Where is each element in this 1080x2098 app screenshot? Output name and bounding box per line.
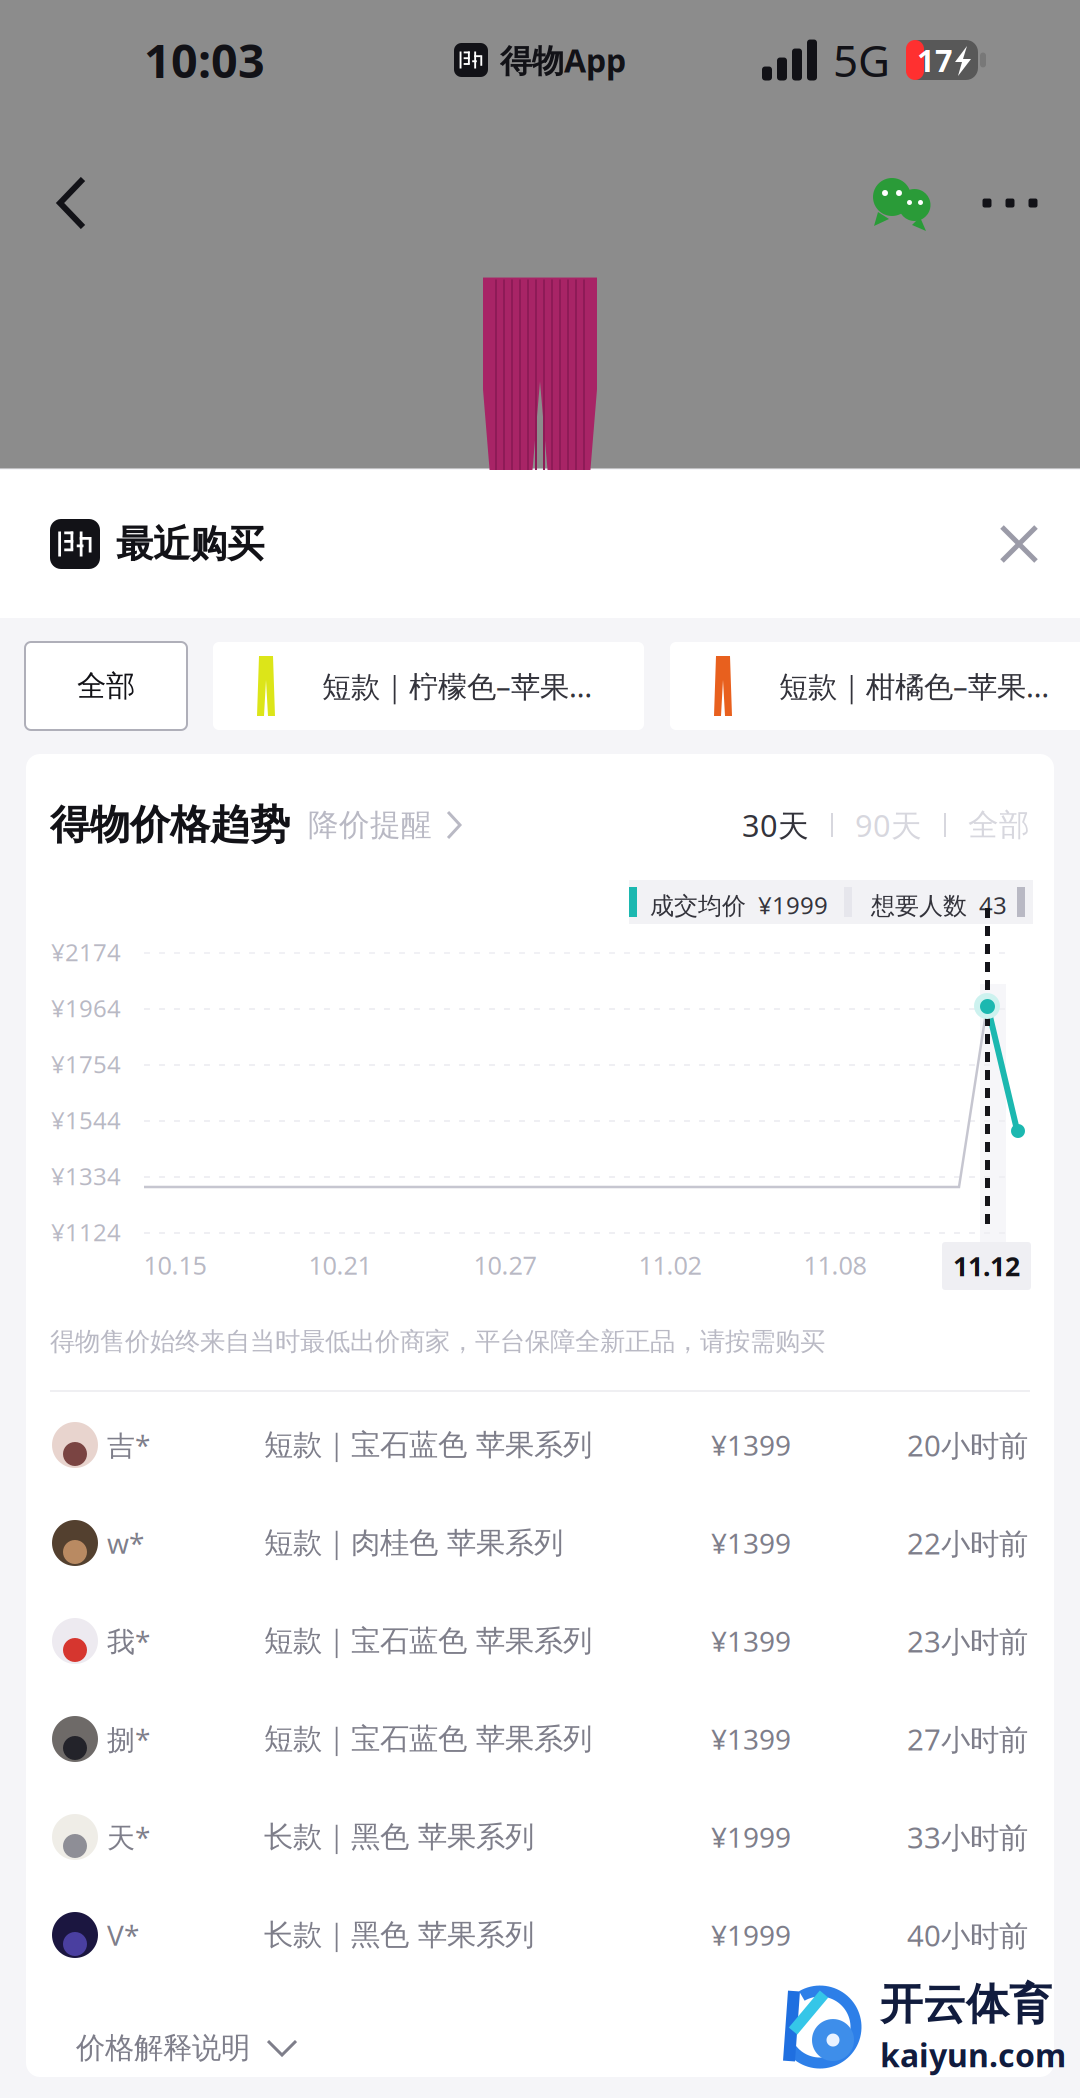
staticText: 降价提醒: [308, 806, 432, 844]
staticText: 11.08: [803, 1248, 866, 1282]
button[interactable]: 天*: [26, 1788, 1054, 1886]
staticText: ¥1399: [711, 1720, 791, 1758]
button[interactable]: 短款｜柑橘色–苹果…: [670, 642, 1080, 730]
staticText: 得物App: [500, 39, 626, 81]
button[interactable]: 关闭: [976, 501, 1062, 587]
staticText: 全部: [968, 806, 1030, 844]
staticText: 33小时前: [907, 1817, 1028, 1856]
staticText: 吉*: [107, 1426, 150, 1464]
staticText: 10:03: [144, 29, 265, 91]
staticText: 17: [917, 40, 953, 80]
staticText: 成交均价 ¥1999: [650, 889, 828, 921]
staticText: 10.27: [473, 1248, 536, 1282]
staticText: 22小时前: [907, 1523, 1028, 1562]
staticText: ¥1399: [711, 1524, 791, 1562]
staticText: V*: [107, 1916, 139, 1954]
staticText: kaiyun.com: [880, 2033, 1066, 2076]
staticText: 30天: [742, 805, 809, 845]
staticText: 11.02: [638, 1248, 701, 1282]
button[interactable]: w*: [26, 1494, 1054, 1592]
staticText: ¥2174: [51, 936, 121, 968]
staticText: ¥1544: [51, 1104, 121, 1136]
staticText: 5G: [833, 31, 890, 89]
button[interactable]: 捌*: [26, 1690, 1054, 1788]
button[interactable]: 返回: [0, 151, 118, 255]
staticText: 短款｜宝石蓝色 苹果系列: [264, 1427, 592, 1463]
staticText: ¥1754: [51, 1048, 121, 1080]
staticText: 20小时前: [907, 1425, 1028, 1464]
button[interactable]: 全部: [968, 806, 1030, 844]
staticText: ¥1964: [51, 992, 121, 1024]
staticText: 11.12: [953, 1248, 1020, 1284]
staticText: 长款｜黑色 苹果系列: [264, 1819, 534, 1855]
staticText: 短款｜肉桂色 苹果系列: [264, 1525, 563, 1561]
staticText: 90天: [855, 805, 922, 845]
staticText: ¥1399: [711, 1622, 791, 1660]
staticText: 想要人数 43: [871, 889, 1007, 921]
staticText: 开云体育: [880, 1978, 1052, 2030]
staticText: ¥1999: [711, 1818, 791, 1856]
staticText: 天*: [107, 1818, 150, 1856]
button[interactable]: 价格解释说明: [50, 2012, 324, 2084]
staticText: 我*: [107, 1622, 150, 1660]
staticText: 23小时前: [907, 1621, 1028, 1660]
staticText: 价格解释说明: [76, 2030, 250, 2066]
staticText: 27小时前: [907, 1719, 1028, 1758]
staticText: 得物售价始终来自当时最低出价商家，平台保障全新正品，请按需购买: [50, 1326, 825, 1357]
staticText: ¥1999: [711, 1916, 791, 1954]
staticText: 得物价格趋势: [50, 800, 290, 849]
staticText: 短款｜柠檬色–苹果…: [322, 666, 592, 705]
staticText: 长款｜黑色 苹果系列: [264, 1917, 534, 1953]
staticText: 40小时前: [907, 1915, 1028, 1954]
staticText: 10.21: [308, 1248, 371, 1282]
staticText: ¥1399: [711, 1426, 791, 1464]
button[interactable]: 短款｜柠檬色–苹果…: [213, 642, 644, 730]
staticText: ¥1334: [51, 1160, 121, 1192]
staticText: 短款｜柑橘色–苹果…: [779, 666, 1049, 705]
button[interactable]: 微信分享: [857, 157, 962, 249]
staticText: 10.15: [143, 1248, 206, 1282]
button[interactable]: 吉*: [26, 1396, 1054, 1494]
staticText: w*: [107, 1524, 144, 1562]
staticText: ¥1124: [51, 1216, 121, 1248]
button[interactable]: 我*: [26, 1592, 1054, 1690]
button[interactable]: 30天: [742, 805, 809, 845]
staticText: 短款｜宝石蓝色 苹果系列: [264, 1623, 592, 1659]
button[interactable]: 90天: [855, 805, 922, 845]
button[interactable]: 全部: [25, 642, 187, 730]
button[interactable]: 更多: [962, 163, 1058, 243]
staticText: 全部: [77, 668, 135, 704]
staticText: 最近购买: [116, 521, 264, 567]
staticText: 捌*: [107, 1720, 150, 1758]
staticText: 短款｜宝石蓝色 苹果系列: [264, 1721, 592, 1757]
button[interactable]: V*: [26, 1886, 1054, 1984]
